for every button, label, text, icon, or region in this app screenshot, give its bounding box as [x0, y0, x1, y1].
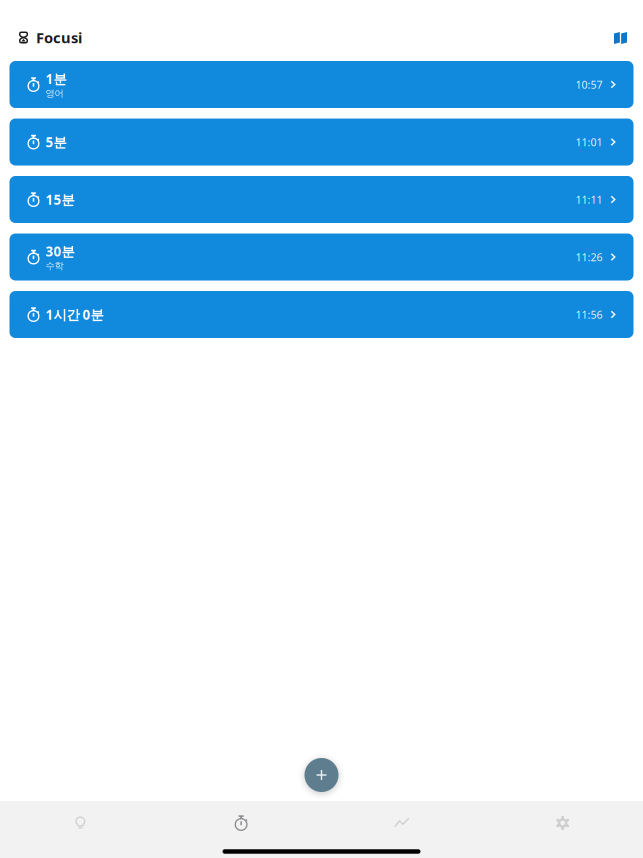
staticText: 30분 [45, 242, 74, 260]
staticText: 11:01 [575, 135, 602, 149]
button[interactable]: Settings [482, 801, 643, 845]
staticText: 11:26 [575, 250, 602, 264]
button[interactable]: 30분 [9, 233, 633, 280]
staticText: 5분 [45, 133, 66, 151]
button[interactable]: Add timer [304, 758, 338, 792]
button[interactable]: Library [602, 23, 643, 52]
button[interactable]: 15분 [9, 176, 633, 223]
button[interactable]: 1시간 0분 [9, 291, 633, 338]
staticText: 10:57 [575, 77, 602, 92]
staticText: 수학 [45, 260, 63, 272]
staticText: 15분 [45, 191, 74, 208]
staticText: 1분 [45, 70, 66, 88]
staticText: 11:11 [575, 192, 602, 207]
staticText: 1시간 0분 [45, 306, 103, 323]
staticText: 11:56 [575, 307, 602, 322]
staticText: Focusi [36, 28, 82, 47]
staticText: 영어 [45, 88, 63, 99]
button[interactable]: Timers [161, 801, 322, 845]
button[interactable]: 5분 [9, 118, 633, 165]
button[interactable]: 1분 [9, 61, 633, 108]
